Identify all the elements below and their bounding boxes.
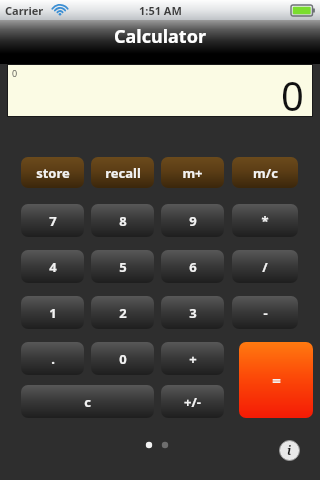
staticText: recall [105, 164, 141, 182]
button[interactable]: 8 [91, 204, 154, 237]
staticText: * [261, 212, 269, 230]
button[interactable]: = [239, 342, 313, 418]
button[interactable]: . [21, 342, 84, 375]
staticText: / [262, 258, 268, 276]
button[interactable]: 6 [161, 250, 224, 283]
staticText: 7 [49, 212, 57, 230]
button[interactable]: c [21, 385, 154, 418]
staticText: 3 [189, 304, 197, 322]
button[interactable]: 5 [91, 250, 154, 283]
button[interactable]: 2 [91, 296, 154, 329]
staticText: . [51, 350, 55, 368]
button[interactable]: + [161, 342, 224, 375]
staticText: 8 [119, 212, 127, 230]
button[interactable]: 4 [21, 250, 84, 283]
button[interactable]: 7 [21, 204, 84, 237]
button[interactable]: / [232, 250, 298, 283]
button[interactable]: m+ [161, 157, 224, 188]
button[interactable]: 3 [161, 296, 224, 329]
staticText: 1:51 AM [139, 3, 182, 18]
staticText: 6 [189, 258, 197, 276]
button[interactable]: Info [277, 438, 301, 462]
button[interactable]: * [232, 204, 298, 237]
staticText: Calculator [114, 24, 206, 49]
staticText: i [287, 442, 292, 458]
button[interactable]: +/- [161, 385, 224, 418]
button[interactable]: 0 [91, 342, 154, 375]
staticText: 9 [189, 212, 197, 230]
staticText: 0 [12, 67, 18, 79]
staticText: 2 [119, 304, 127, 322]
staticText: +/- [184, 393, 201, 411]
staticText: 4 [49, 258, 57, 276]
button[interactable]: 9 [161, 204, 224, 237]
button[interactable]: recall [91, 157, 154, 188]
staticText: m/c [253, 164, 278, 182]
staticText: 5 [119, 258, 127, 276]
staticText: Carrier [5, 3, 44, 18]
staticText: - [263, 304, 268, 322]
button[interactable]: 1 [21, 296, 84, 329]
staticText: 0 [281, 68, 304, 119]
staticText: m+ [182, 164, 203, 182]
staticText: store [36, 164, 70, 182]
staticText: 1 [49, 304, 57, 322]
button[interactable]: store [21, 157, 84, 188]
staticText: = [272, 370, 281, 390]
staticText: + [189, 350, 197, 368]
button[interactable]: - [232, 296, 298, 329]
staticText: 0 [119, 350, 127, 368]
button[interactable]: m/c [232, 157, 298, 188]
staticText: c [84, 393, 91, 411]
